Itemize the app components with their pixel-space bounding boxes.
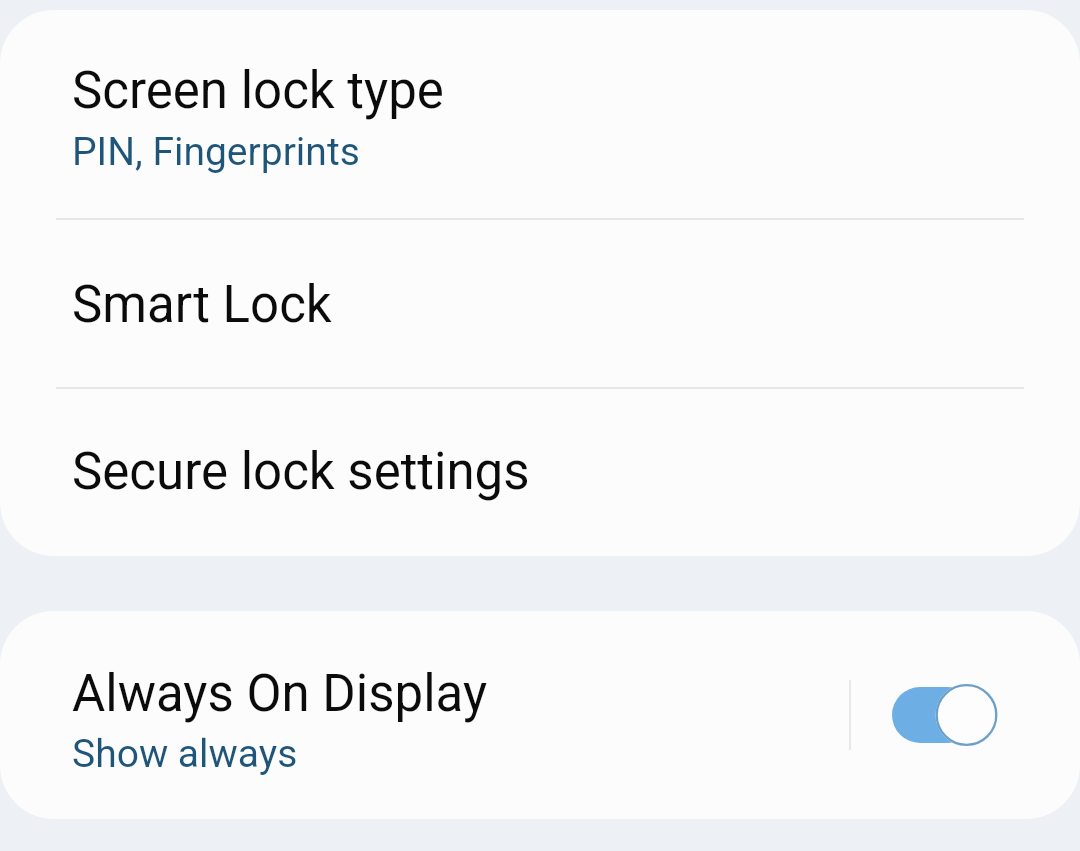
button[interactable]: Secure lock settings (0, 388, 1080, 556)
button[interactable]: Always On Display (0, 611, 1080, 819)
staticText: Smart Lock (72, 275, 332, 335)
button[interactable]: Always On Display, on (876, 660, 1010, 770)
button[interactable]: Smart Lock (0, 219, 1080, 388)
staticText: Show always (72, 731, 298, 777)
staticText: Always On Display (72, 664, 488, 724)
staticText: Screen lock type (72, 61, 444, 121)
staticText: PIN, Fingerprints (72, 129, 360, 175)
button[interactable]: Screen lock type (0, 10, 1080, 219)
staticText: Secure lock settings (72, 442, 530, 502)
